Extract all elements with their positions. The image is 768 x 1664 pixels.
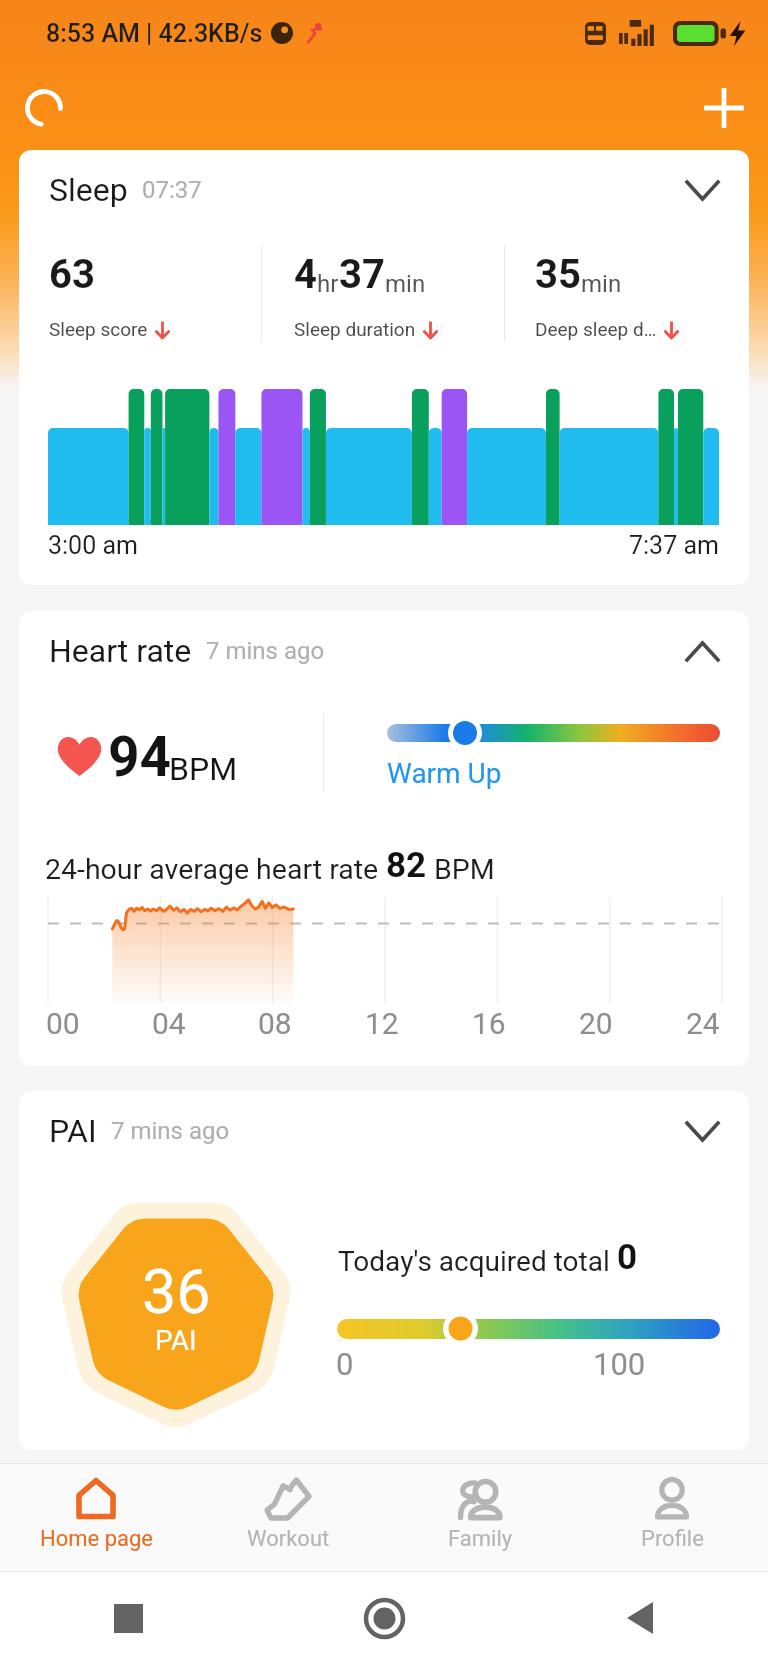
staticText: 7:37 am xyxy=(629,531,719,560)
staticText: PAI xyxy=(49,1112,97,1150)
staticText: Workout xyxy=(247,1526,330,1552)
button[interactable]: Add xyxy=(688,72,760,144)
staticText: Sleep score xyxy=(49,318,148,340)
staticText: Family xyxy=(448,1526,513,1552)
staticText: min xyxy=(385,270,426,298)
staticText: BPM xyxy=(427,853,495,886)
staticText: 16 xyxy=(472,1006,506,1041)
button[interactable]: Workout xyxy=(192,1464,384,1571)
button[interactable]: Heart rate xyxy=(19,611,749,1066)
button[interactable]: Expand xyxy=(676,1105,728,1157)
staticText: 4 xyxy=(294,251,317,298)
staticText: 94 xyxy=(108,725,172,789)
staticText: BPM xyxy=(169,750,238,788)
button[interactable]: Home xyxy=(256,1572,512,1664)
staticText: 7 mins ago xyxy=(206,637,325,665)
staticText: 63 xyxy=(49,251,95,298)
button[interactable]: PAI xyxy=(19,1091,749,1450)
staticText: Sleep xyxy=(49,171,128,209)
button[interactable]: Home page xyxy=(0,1464,192,1571)
staticText: 0 xyxy=(336,1346,354,1382)
staticText: 100 xyxy=(593,1346,646,1382)
staticText: Warm Up xyxy=(387,757,502,790)
staticText: min xyxy=(581,270,622,298)
staticText: Deep sleep d… xyxy=(535,318,657,340)
staticText: 0 xyxy=(617,1237,638,1278)
staticText: Profile xyxy=(641,1526,704,1552)
staticText: hr xyxy=(317,270,339,298)
button[interactable]: Back xyxy=(512,1572,768,1664)
button[interactable]: Recents xyxy=(0,1572,256,1664)
button[interactable]: Collapse xyxy=(676,625,728,677)
staticText: 37 xyxy=(339,251,385,298)
button[interactable]: Sleep xyxy=(19,150,749,585)
button[interactable]: Syncing xyxy=(10,74,78,142)
staticText: 8:53 AM | 42.3KB/s xyxy=(46,19,263,48)
staticText: 3:00 am xyxy=(48,531,138,560)
staticText: 7 mins ago xyxy=(111,1117,230,1145)
staticText: 82 xyxy=(386,845,427,886)
staticText: 36 xyxy=(142,1256,211,1327)
button[interactable]: Expand xyxy=(676,164,728,216)
staticText: 12 xyxy=(365,1006,399,1041)
staticText: 07:37 xyxy=(142,176,202,204)
staticText: 35 xyxy=(535,251,581,298)
button[interactable]: Family xyxy=(384,1464,576,1571)
button[interactable]: Profile xyxy=(576,1464,768,1571)
staticText: 04 xyxy=(152,1006,186,1041)
staticText: Sleep duration xyxy=(294,318,416,340)
staticText: Heart rate xyxy=(49,632,192,670)
staticText: 24-hour average heart rate xyxy=(45,853,386,886)
staticText: 24 xyxy=(686,1006,720,1041)
staticText: 08 xyxy=(258,1006,292,1041)
staticText: Today's acquired total xyxy=(338,1245,617,1278)
staticText: 00 xyxy=(46,1006,80,1041)
staticText: 20 xyxy=(579,1006,613,1041)
staticText: PAI xyxy=(155,1324,197,1357)
staticText: Home page xyxy=(40,1526,153,1552)
